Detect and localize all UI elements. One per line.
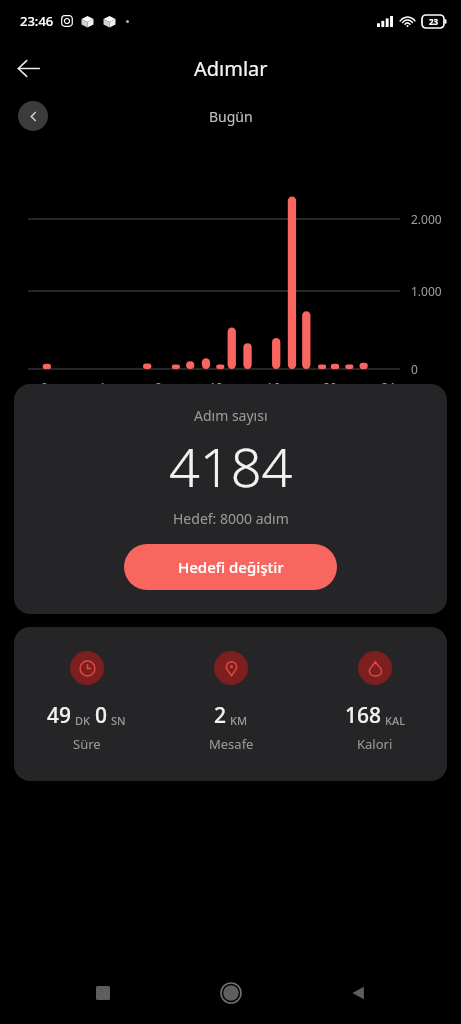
staticText: 16 bbox=[266, 379, 280, 395]
staticText: Hedef: 8000 adım bbox=[173, 509, 289, 528]
button[interactable]: Hedefi değiştir bbox=[124, 544, 337, 590]
staticText: 12 bbox=[209, 379, 223, 395]
staticText: SN bbox=[111, 713, 126, 728]
staticText: 20 bbox=[323, 379, 337, 395]
staticText: Mesafe bbox=[209, 735, 254, 753]
staticText: 1.000 bbox=[411, 283, 442, 299]
button[interactable]: Recents bbox=[79, 969, 127, 1017]
other: Wi-Fi bbox=[400, 14, 415, 29]
staticText: 0 bbox=[95, 701, 108, 730]
staticText: 49 bbox=[47, 701, 72, 730]
staticText: DK bbox=[75, 713, 90, 728]
staticText: 24 bbox=[381, 379, 395, 395]
staticText: Adımlar bbox=[194, 55, 268, 82]
staticText: Kalori bbox=[357, 735, 393, 753]
other: Signal bbox=[377, 16, 393, 27]
button[interactable]: Adım sayısı bbox=[14, 384, 447, 614]
staticText: Hedefi değiştir bbox=[178, 557, 284, 577]
other: Distance bbox=[214, 651, 248, 685]
staticText: 4184 bbox=[169, 429, 293, 503]
staticText: 168 bbox=[345, 701, 382, 730]
staticText: 23:46 bbox=[20, 12, 54, 30]
other: Battery 23% bbox=[422, 15, 447, 28]
other: Calories bbox=[358, 651, 392, 685]
staticText: Bugün bbox=[209, 107, 253, 126]
staticText: 8 bbox=[155, 379, 162, 395]
staticText: 2 bbox=[214, 701, 227, 730]
button[interactable]: Home bbox=[207, 969, 255, 1017]
staticText: 0 bbox=[41, 379, 48, 395]
staticText: KAL bbox=[385, 713, 406, 728]
staticText: 23 bbox=[429, 16, 439, 27]
button[interactable]: Back bbox=[6, 46, 50, 90]
other: Duration bbox=[70, 651, 104, 685]
button[interactable]: Previous day bbox=[18, 101, 48, 131]
staticText: Süre bbox=[73, 735, 101, 753]
staticText: KM bbox=[230, 713, 248, 728]
staticText: 4 bbox=[98, 379, 105, 395]
staticText: Adım sayısı bbox=[194, 406, 268, 425]
button[interactable]: Duration bbox=[14, 627, 447, 781]
staticText: 2.000 bbox=[411, 211, 442, 227]
staticText: 0 bbox=[411, 361, 418, 377]
button[interactable]: Back bbox=[334, 969, 382, 1017]
